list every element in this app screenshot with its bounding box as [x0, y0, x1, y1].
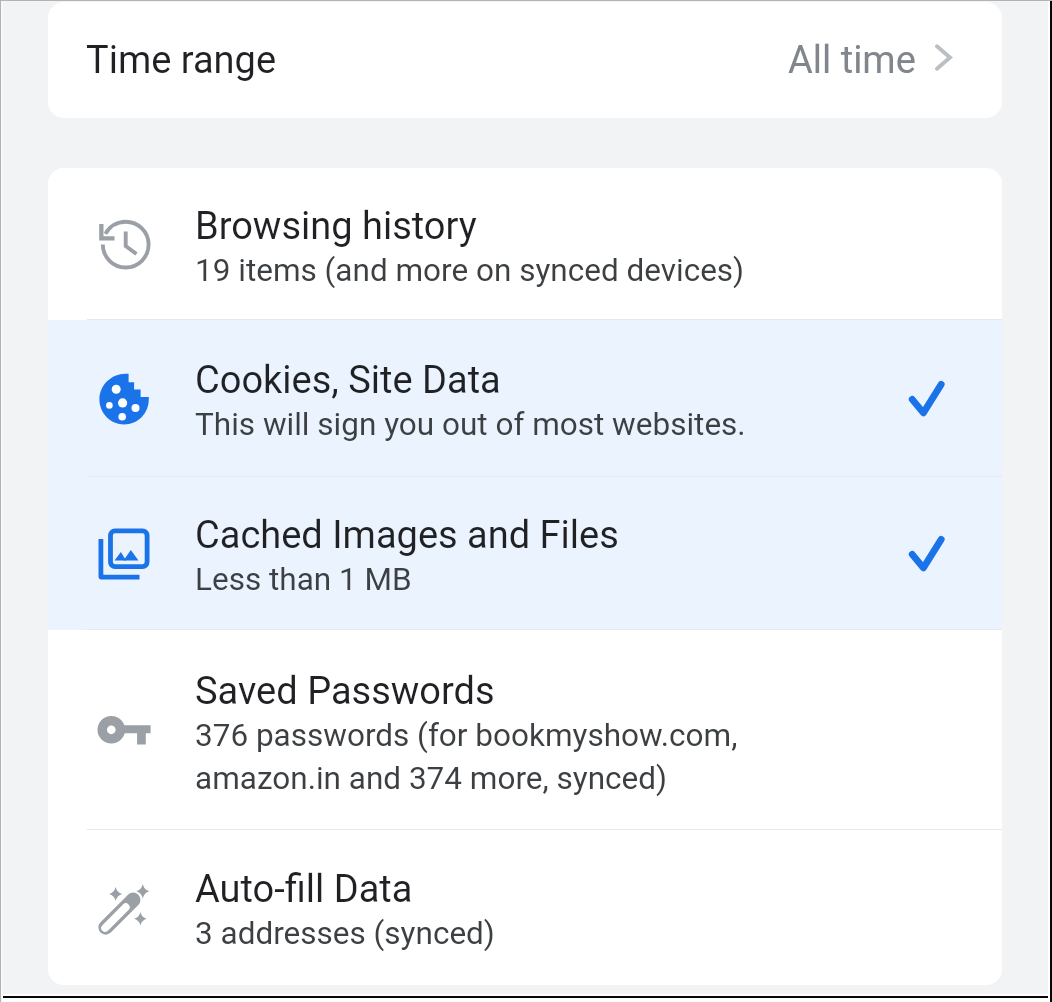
other: Cached images and files: [92, 522, 156, 586]
staticText: Saved Passwords: [195, 669, 495, 714]
staticText: Time range: [86, 38, 277, 83]
staticText: Cookies, Site Data: [195, 358, 501, 403]
other: Saved passwords: [92, 698, 156, 762]
button[interactable]: Cookies and site data: [48, 320, 1002, 477]
staticText: 19 items (and more on synced devices): [195, 252, 745, 289]
button[interactable]: Auto-fill data: [48, 830, 1002, 985]
staticText: 376 passwords (for bookmyshow.com,: [195, 717, 738, 754]
staticText: Browsing history: [195, 204, 477, 249]
other: Auto-fill data: [92, 876, 156, 940]
staticText: amazon.in and 374 more, synced): [195, 760, 668, 797]
button[interactable]: Time range: [48, 2, 1002, 118]
staticText: This will sign you out of most websites.: [195, 406, 746, 443]
button[interactable]: Saved passwords: [48, 630, 1002, 830]
other: Browsing history: [92, 212, 156, 276]
button[interactable]: Cached images and files: [48, 477, 1002, 630]
other: Cookies and site data: [92, 367, 156, 431]
staticText: 3 addresses (synced): [195, 915, 495, 952]
staticText: Cached Images and Files: [195, 513, 619, 558]
button[interactable]: Browsing history: [48, 168, 1002, 320]
staticText: All time: [788, 38, 916, 83]
staticText: Auto-fill Data: [195, 867, 413, 912]
staticText: Less than 1 MB: [195, 561, 412, 598]
